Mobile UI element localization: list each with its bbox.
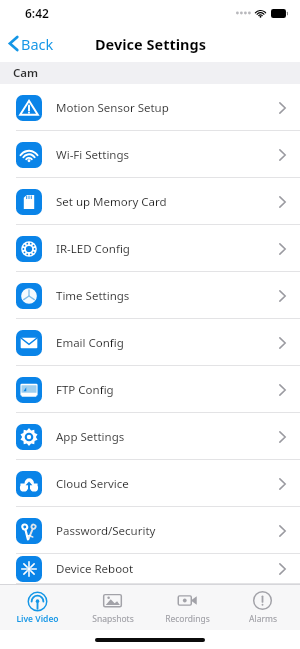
button[interactable]: App Settings (0, 413, 300, 460)
button[interactable]: Motion Sensor Setup (0, 84, 300, 131)
button[interactable]: Alarms (225, 585, 300, 630)
staticText: App Settings (56, 429, 279, 445)
staticText: FTP Config (56, 382, 279, 398)
button[interactable]: IR-LED Config (0, 225, 300, 272)
button[interactable]: Live Video (0, 585, 75, 630)
button[interactable]: Password/Security (0, 507, 300, 554)
button[interactable]: Email Config (0, 319, 300, 366)
staticText: Email Config (56, 335, 279, 351)
staticText: Device Reboot (56, 561, 279, 577)
staticText: IR-LED Config (56, 241, 279, 257)
staticText: Password/Security (56, 523, 279, 539)
button[interactable]: Device Reboot (0, 554, 300, 584)
staticText: Snapshots (92, 613, 134, 625)
staticText: Alarms (249, 613, 277, 625)
staticText: 6:42 (25, 5, 49, 21)
button[interactable]: Snapshots (75, 585, 150, 630)
staticText: Cam (13, 65, 39, 81)
staticText: Recordings (165, 613, 210, 625)
staticText: Cloud Service (56, 476, 279, 492)
staticText: Wi-Fi Settings (56, 147, 279, 163)
button[interactable]: Time Settings (0, 272, 300, 319)
staticText: Time Settings (56, 288, 279, 304)
button[interactable]: Recordings (150, 585, 225, 630)
staticText: Set up Memory Card (56, 194, 279, 210)
button[interactable]: Set up Memory Card (0, 178, 300, 225)
button[interactable]: Back (0, 25, 64, 62)
button[interactable]: Wi-Fi Settings (0, 131, 300, 178)
button[interactable]: FTP Config (0, 366, 300, 413)
staticText: Back (21, 34, 54, 54)
staticText: Device Settings (95, 34, 206, 54)
staticText: Live Video (16, 613, 59, 625)
button[interactable]: Cloud Service (0, 460, 300, 507)
staticText: Motion Sensor Setup (56, 100, 279, 116)
